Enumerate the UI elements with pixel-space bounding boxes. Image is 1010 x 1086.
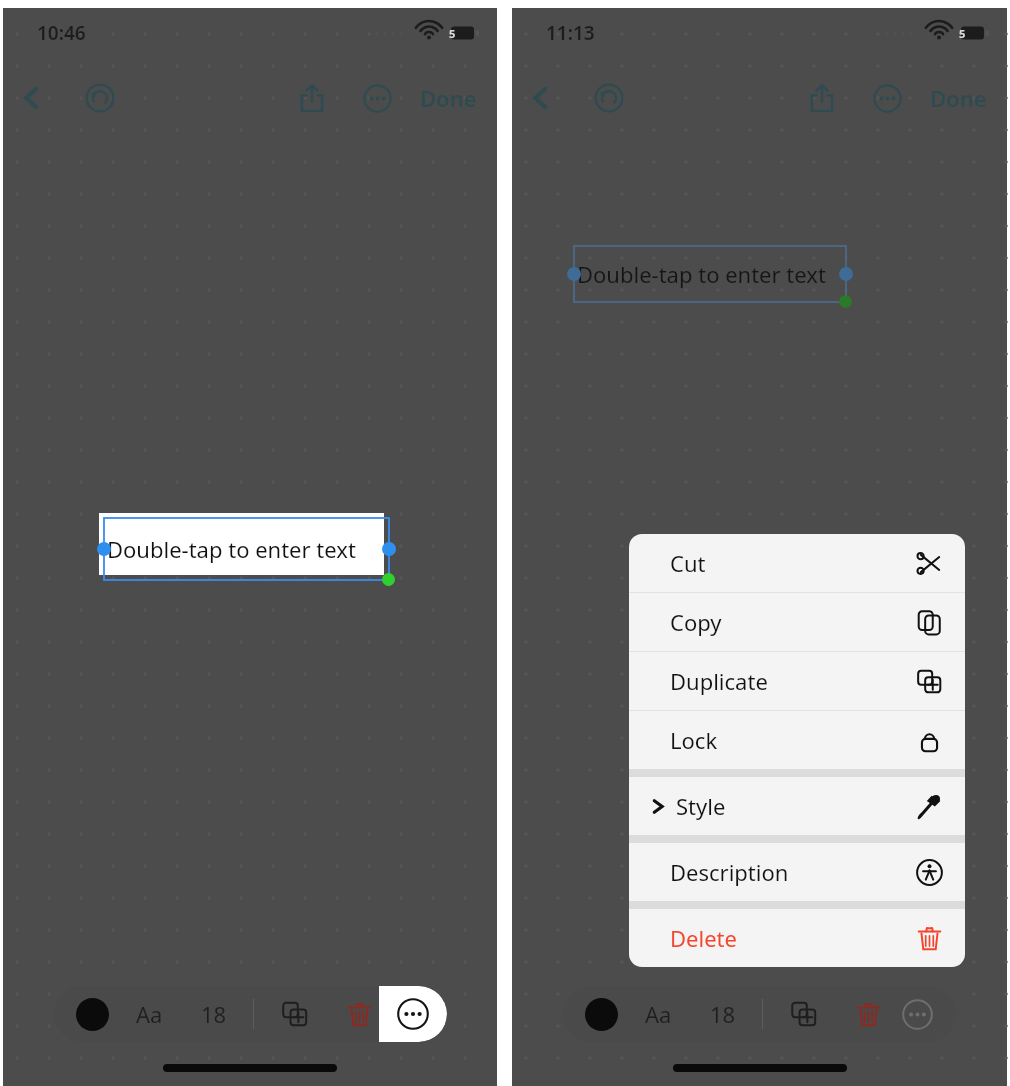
button[interactable]: Description — [629, 843, 965, 901]
button[interactable]: Back — [11, 77, 53, 119]
staticText: 18 — [710, 999, 736, 1029]
button[interactable]: Copy — [629, 593, 965, 651]
button[interactable]: Aa — [637, 991, 680, 1037]
staticText: Cut — [670, 548, 706, 578]
staticText: 11:13 — [546, 20, 595, 46]
staticText: Copy — [670, 607, 722, 637]
button[interactable]: Undo — [587, 76, 631, 120]
button[interactable]: 18 — [193, 991, 235, 1037]
button[interactable]: Delete — [845, 991, 891, 1037]
staticText: 5 — [449, 26, 456, 41]
staticText: Duplicate — [670, 666, 768, 696]
staticText: Done — [420, 83, 477, 113]
button[interactable]: More options — [865, 76, 909, 120]
staticText: Delete — [670, 923, 737, 953]
button[interactable]: Style — [629, 777, 965, 835]
button[interactable]: 18 — [702, 991, 744, 1037]
button[interactable]: Delete — [336, 991, 382, 1037]
staticText: 10:46 — [37, 20, 86, 46]
button[interactable]: Lock — [629, 711, 965, 769]
button[interactable]: Duplicate — [272, 991, 318, 1037]
button[interactable]: Done — [924, 77, 993, 119]
button[interactable]: Aa — [128, 991, 171, 1037]
staticText: Aa — [136, 999, 163, 1029]
staticText: Style — [676, 791, 726, 821]
button[interactable]: Done — [414, 77, 483, 119]
button[interactable]: Duplicate — [781, 991, 827, 1037]
staticText: Double-tap to enter text — [107, 534, 356, 564]
button[interactable]: Text colour — [579, 992, 623, 1036]
button[interactable]: Text colour — [70, 992, 114, 1036]
button[interactable]: Back — [520, 77, 562, 119]
button[interactable]: Undo — [78, 76, 122, 120]
staticText: 5 — [959, 26, 966, 41]
button[interactable]: Cut — [629, 534, 965, 592]
button[interactable]: More options — [894, 991, 940, 1037]
button[interactable]: More options — [355, 76, 399, 120]
button[interactable]: Share — [800, 76, 844, 120]
button[interactable]: Duplicate — [629, 652, 965, 710]
button[interactable]: More options — [379, 986, 447, 1042]
button[interactable]: Share — [290, 76, 334, 120]
staticText: Done — [930, 83, 987, 113]
button[interactable]: Delete — [629, 909, 965, 967]
button[interactable]: Double-tap to enter text — [574, 246, 846, 302]
button[interactable]: Double-tap to enter text — [104, 518, 389, 580]
staticText: Lock — [670, 725, 718, 755]
staticText: Double-tap to enter text — [577, 259, 826, 289]
staticText: Description — [670, 857, 789, 887]
staticText: Aa — [645, 999, 672, 1029]
staticText: 18 — [201, 999, 227, 1029]
